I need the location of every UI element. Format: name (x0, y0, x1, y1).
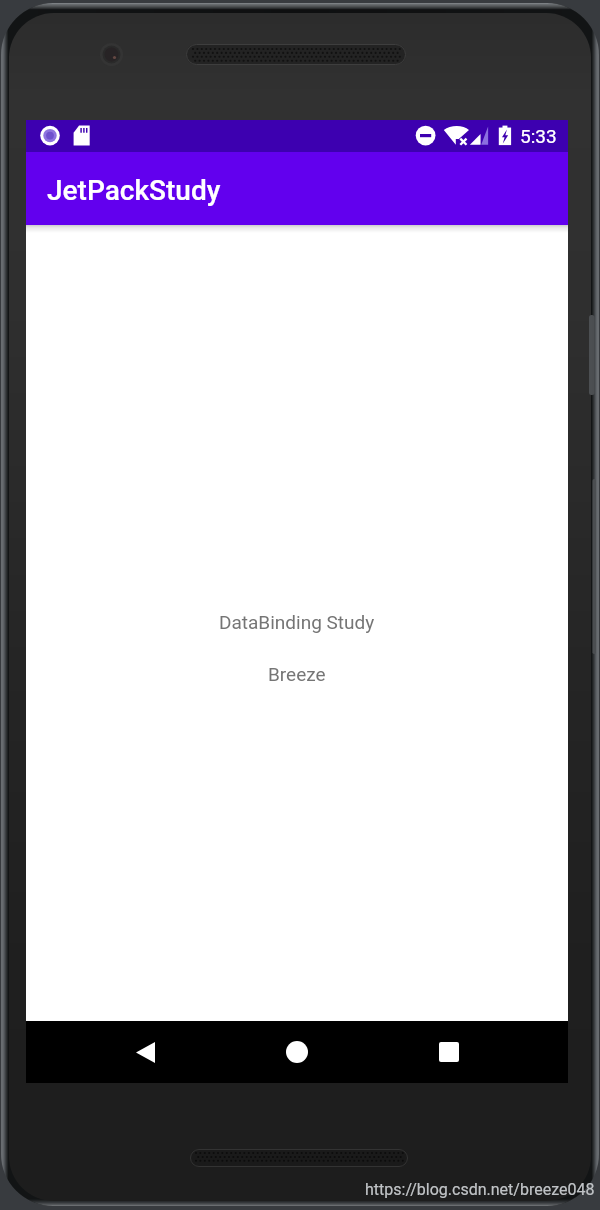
button[interactable]: Home (266, 1021, 328, 1083)
staticText: 5:33 (520, 125, 557, 147)
staticText: Breeze (268, 663, 326, 685)
button[interactable]: Back (114, 1021, 176, 1083)
staticText: DataBinding Study (219, 611, 375, 633)
button[interactable]: Recents (418, 1021, 480, 1083)
staticText: JetPackStudy (47, 174, 221, 207)
staticText: https://blog.csdn.net/breeze048 (365, 1180, 595, 1199)
